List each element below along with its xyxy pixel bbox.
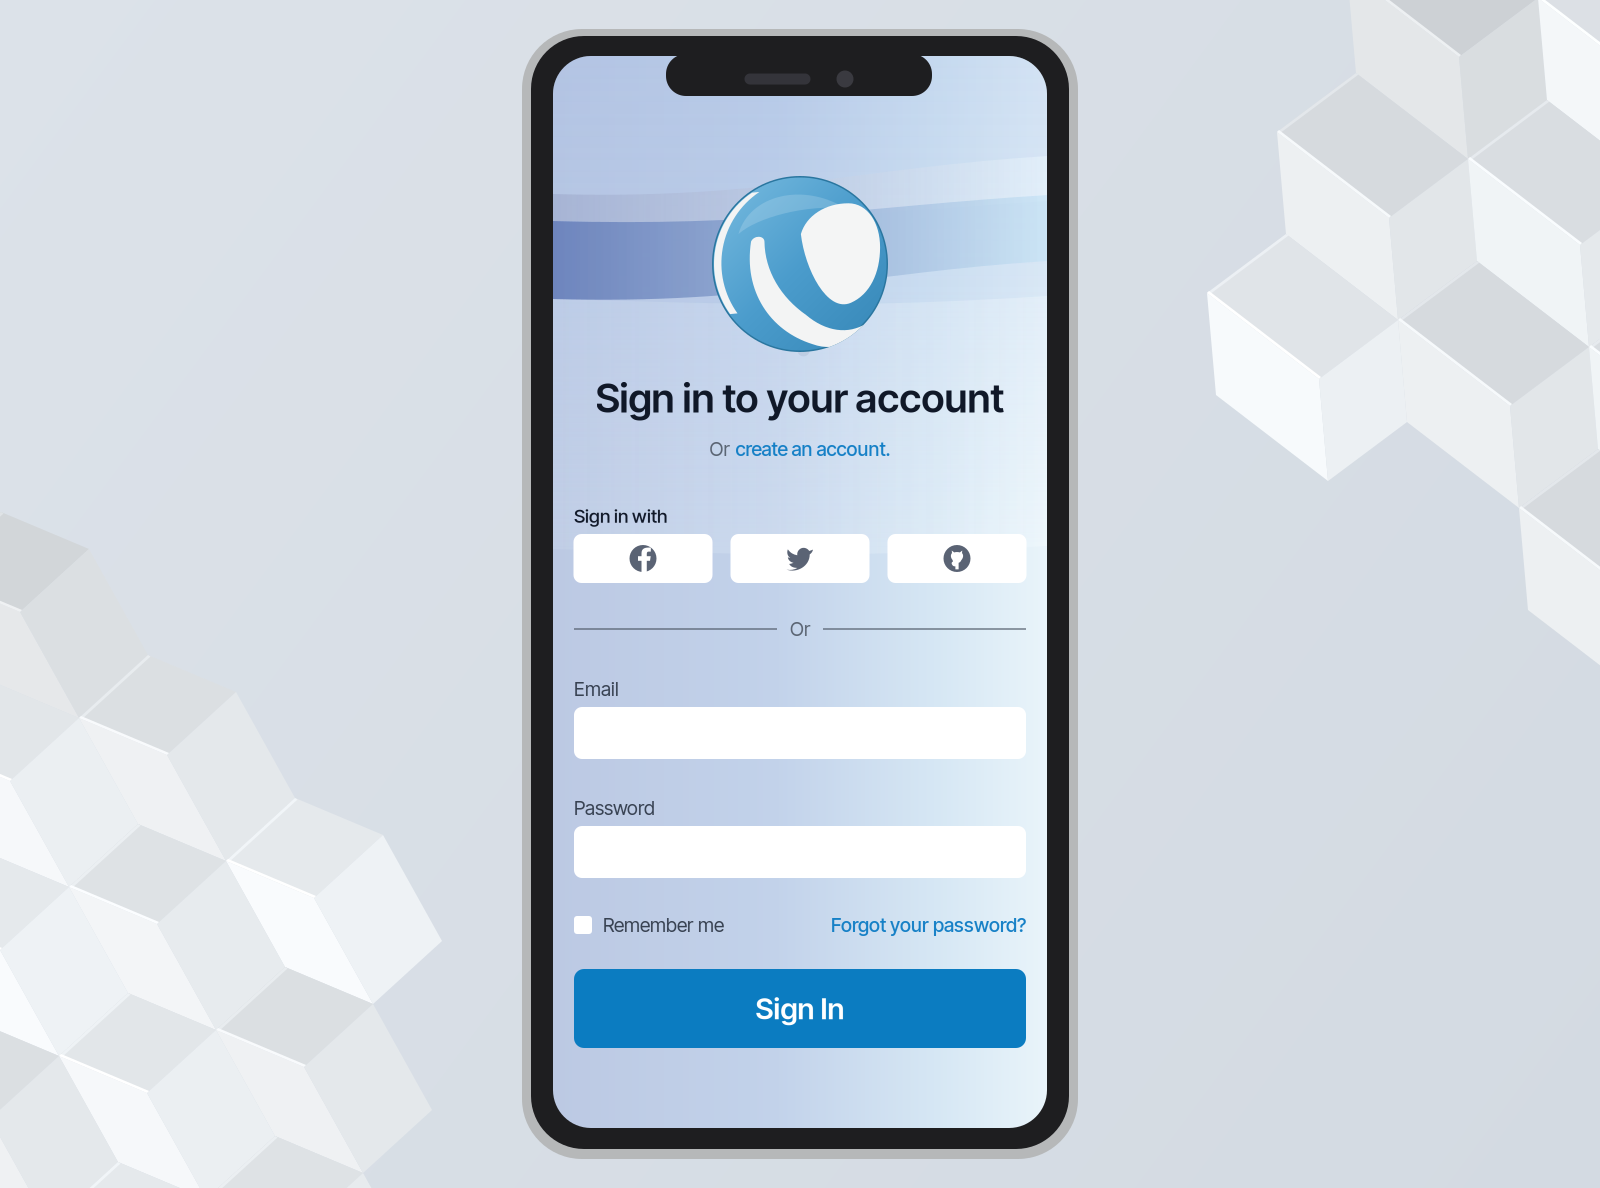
staticText: Sign in with: [574, 505, 667, 527]
staticText: Or: [709, 437, 729, 461]
button[interactable]: Sign in with Twitter: [730, 534, 869, 583]
staticText: Sign In: [755, 991, 844, 1026]
staticText: Forgot your password?: [831, 913, 1026, 937]
button[interactable]: Sign In: [574, 969, 1026, 1048]
staticText: Email: [574, 677, 619, 701]
button[interactable]: Forgot your password?: [831, 913, 1026, 937]
button[interactable]: Sign in with GitHub: [887, 534, 1026, 583]
staticText: Sign in to your account: [595, 374, 1004, 422]
staticText: Or: [790, 617, 810, 641]
button[interactable]: create an account.: [735, 437, 890, 461]
staticText: Password: [574, 796, 655, 820]
button[interactable]: Sign in with Facebook: [573, 534, 712, 583]
staticText: Remember me: [603, 913, 724, 937]
staticText: create an account.: [735, 437, 890, 461]
button[interactable]: Remember me: [574, 913, 724, 937]
